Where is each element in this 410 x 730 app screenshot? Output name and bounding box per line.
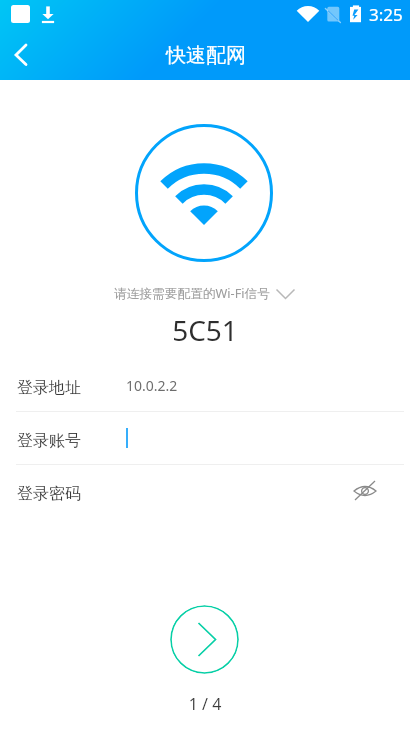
staticText: 10.0.2.2 [126,376,178,395]
staticText: 请连接需要配置的Wi-Fi信号 [114,284,270,301]
staticText: 3:25 [369,3,403,26]
staticText: 5C51 [0,311,410,349]
staticText: 登录地址 [17,378,81,398]
staticText: 登录账号 [17,431,81,451]
staticText: 1 / 4 [0,693,410,715]
staticText: 登录密码 [17,484,81,504]
button[interactable]: Back [0,34,42,76]
button[interactable]: 请连接需要配置的Wi-Fi信号 [114,284,298,304]
button[interactable]: Next [170,605,239,674]
staticText: 快速配网 [166,43,246,68]
button[interactable]: 登录密码 [0,465,410,517]
button[interactable]: 登录地址 [0,359,410,411]
button[interactable]: 登录账号 [0,412,410,464]
button[interactable]: Show password [351,477,379,505]
